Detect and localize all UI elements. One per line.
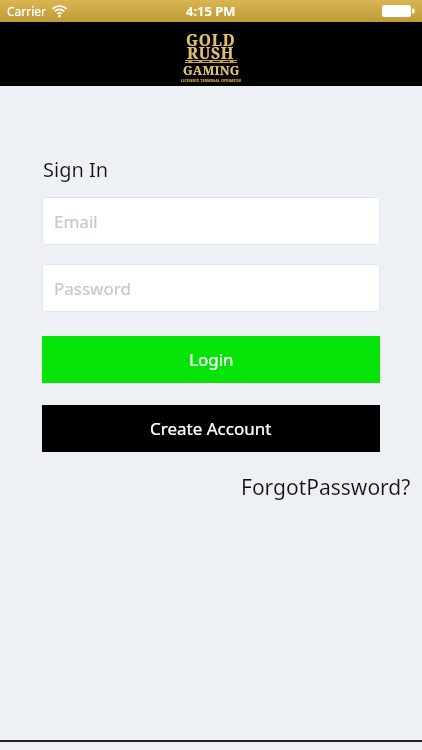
- staticText: Carrier: [7, 3, 47, 19]
- staticText: RUSH: [187, 42, 235, 63]
- button[interactable]: Email: [42, 197, 380, 245]
- staticText: GAMING: [183, 62, 240, 79]
- staticText: Password: [54, 277, 131, 300]
- button[interactable]: ForgotPassword?: [241, 473, 411, 502]
- staticText: 4:15 PM: [186, 2, 236, 20]
- staticText: LICENSED TERMINAL OPERATOR: [181, 78, 241, 83]
- button[interactable]: Password: [42, 264, 380, 312]
- button[interactable]: Login: [42, 336, 380, 383]
- staticText: GOLD: [186, 29, 236, 50]
- staticText: Create Account: [150, 417, 272, 440]
- staticText: Email: [54, 210, 98, 233]
- staticText: Sign In: [43, 156, 109, 183]
- staticText: Login: [189, 348, 234, 371]
- button[interactable]: Create Account: [42, 405, 380, 452]
